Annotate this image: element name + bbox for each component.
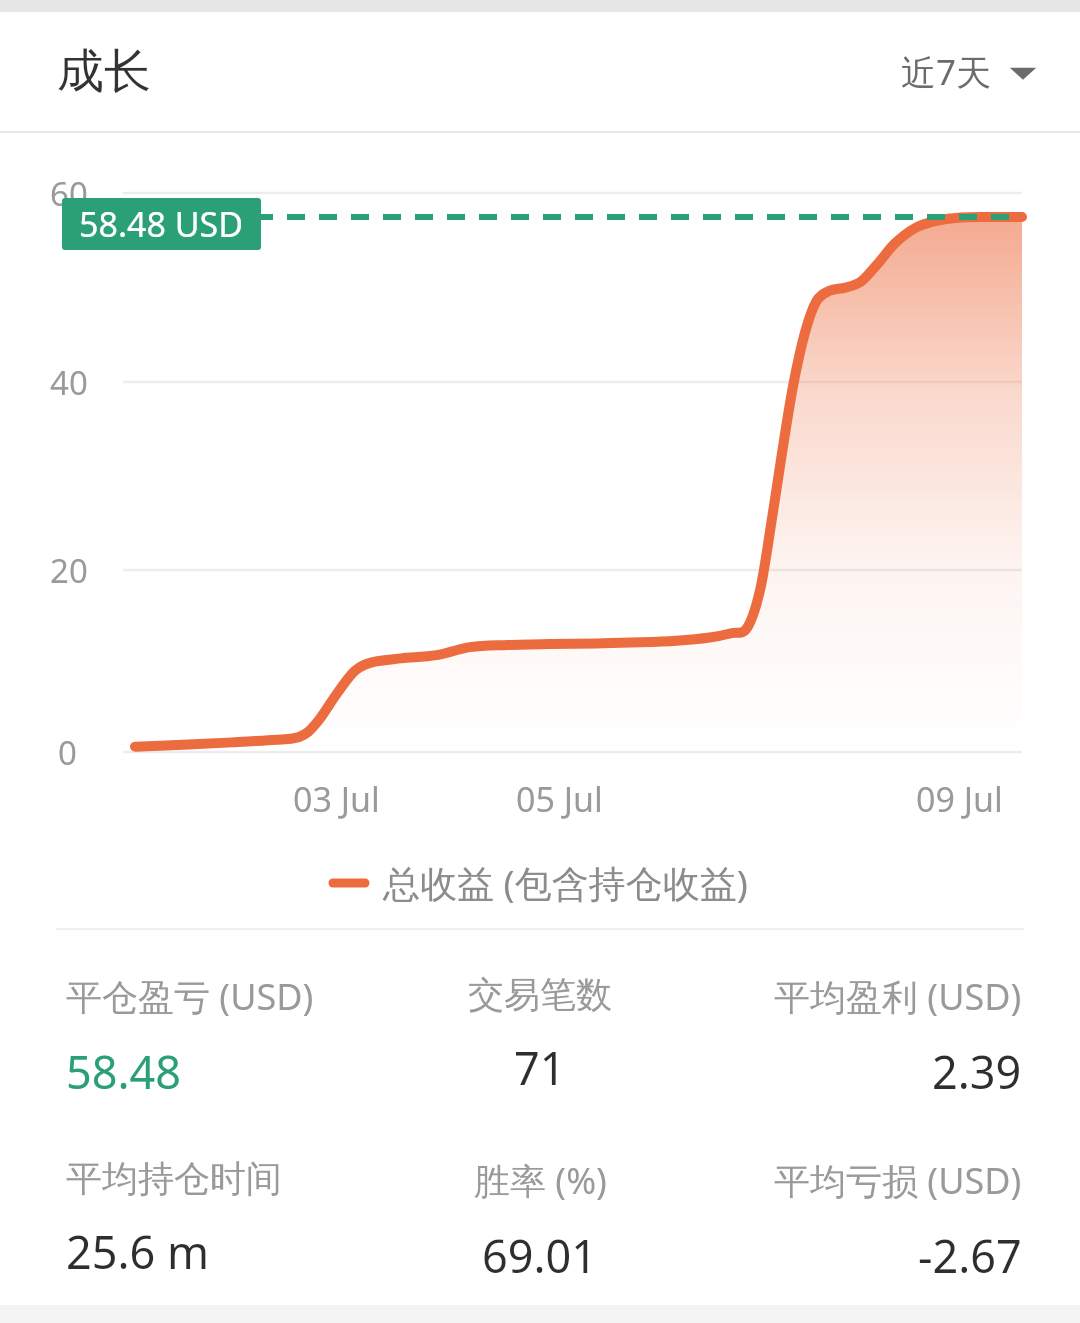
staticText: 2.39 bbox=[932, 1041, 1022, 1102]
staticText: 交易笔数 bbox=[468, 972, 612, 1017]
staticText: 25.6 m bbox=[66, 1221, 210, 1282]
staticText: 0 bbox=[58, 730, 77, 775]
staticText: 58.48 bbox=[66, 1041, 182, 1102]
staticText: 20 bbox=[50, 548, 88, 593]
staticText: 71 bbox=[514, 1037, 566, 1098]
button[interactable]: 胜率 (%) bbox=[360, 1156, 720, 1286]
button[interactable]: 58.48 USD bbox=[62, 198, 261, 250]
staticText: 总收益 (包含持仓收益) bbox=[383, 857, 748, 908]
button[interactable]: 平均持仓时间 bbox=[0, 1156, 360, 1282]
staticText: 58.48 USD bbox=[79, 201, 244, 247]
staticText: 05 Jul bbox=[516, 776, 603, 822]
staticText: 平均亏损 (USD) bbox=[774, 1156, 1022, 1205]
staticText: 03 Jul bbox=[293, 776, 380, 822]
staticText: 平仓盈亏 (USD) bbox=[66, 972, 314, 1021]
staticText: 69.01 bbox=[482, 1225, 598, 1286]
button[interactable]: 平仓盈亏 (USD) bbox=[0, 972, 360, 1102]
button[interactable]: 平均亏损 (USD) bbox=[720, 1156, 1080, 1286]
staticText: 09 Jul bbox=[916, 776, 1003, 822]
staticText: 平均盈利 (USD) bbox=[774, 972, 1022, 1021]
staticText: -2.67 bbox=[918, 1225, 1022, 1286]
button[interactable]: Select period, last 7 days bbox=[901, 48, 1038, 96]
button[interactable]: 平均盈利 (USD) bbox=[720, 972, 1080, 1102]
staticText: 胜率 (%) bbox=[474, 1156, 607, 1205]
staticText: 近7天 bbox=[901, 48, 992, 96]
staticText: 成长 bbox=[57, 42, 151, 101]
button[interactable]: 交易笔数 bbox=[360, 972, 720, 1098]
staticText: 40 bbox=[50, 360, 88, 405]
staticText: 平均持仓时间 bbox=[66, 1156, 282, 1201]
staticText: 60 bbox=[50, 171, 88, 216]
